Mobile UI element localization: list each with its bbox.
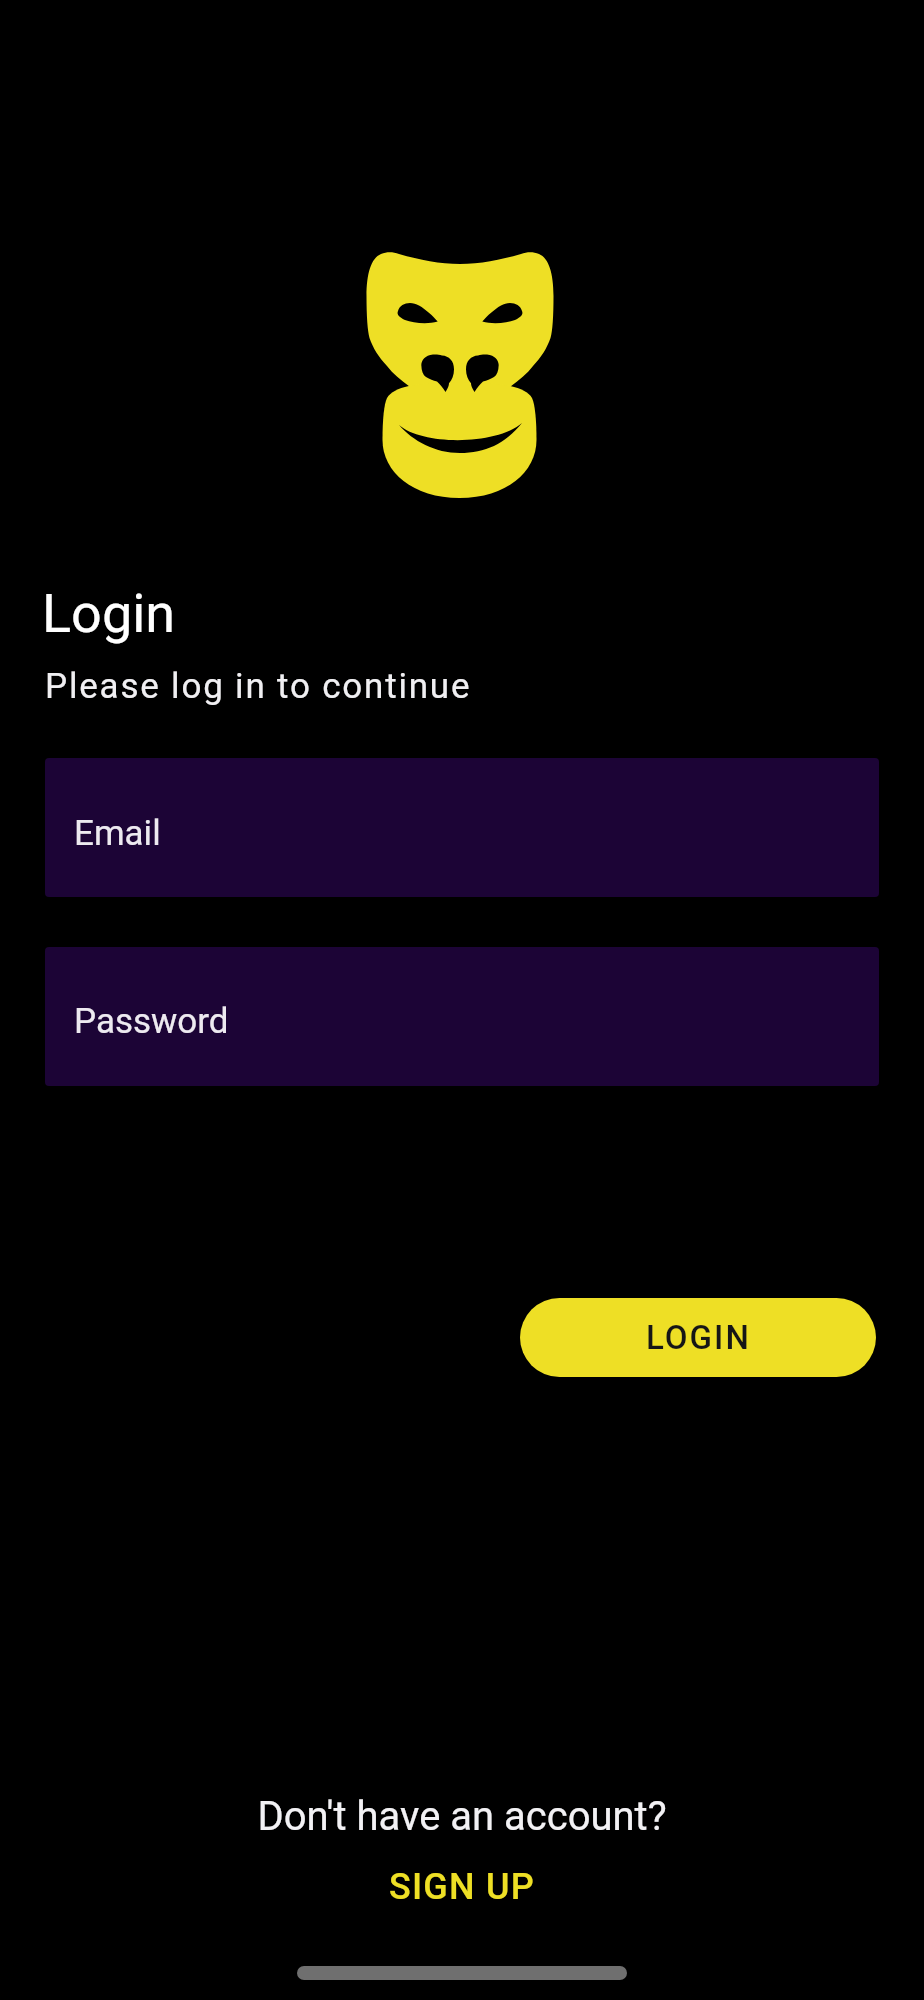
staticText: Don't have an account? [0, 1793, 924, 1840]
staticText: Password [74, 1001, 229, 1042]
staticText: Login [42, 582, 176, 645]
button[interactable]: Email [45, 758, 879, 897]
staticText: Please log in to continue [45, 666, 472, 707]
button[interactable]: Password [45, 947, 879, 1086]
button[interactable]: LOGIN [520, 1298, 876, 1377]
staticText: Email [74, 813, 161, 854]
staticText: LOGIN [646, 1318, 751, 1357]
button[interactable]: SIGN UP [375, 1850, 549, 1924]
staticText: SIGN UP [389, 1866, 535, 1908]
